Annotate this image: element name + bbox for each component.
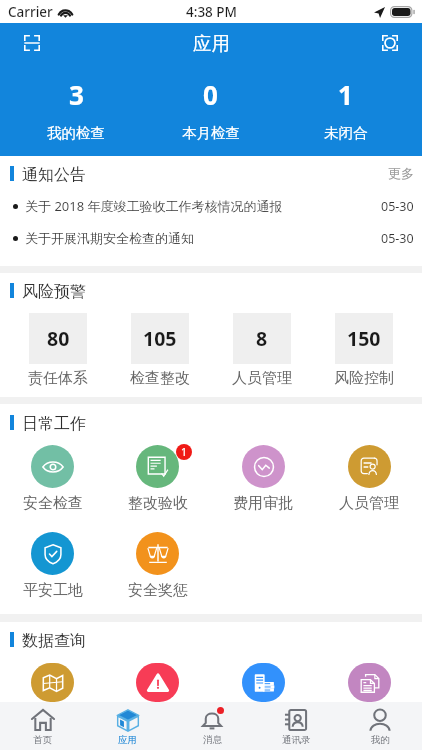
button[interactable]: 通讯录 — [254, 702, 338, 750]
staticText: 检查整改 — [130, 369, 190, 388]
staticText: 应用 — [193, 32, 230, 55]
button[interactable]: 费用查询 — [210, 663, 316, 702]
staticText: 安全检查 — [23, 494, 83, 513]
staticText: 8 — [256, 325, 268, 352]
button[interactable]: 我的 — [338, 702, 422, 750]
staticText: 安全奖惩 — [128, 581, 188, 600]
staticText: 80 — [47, 325, 70, 352]
staticText: 4:38 PM — [186, 3, 237, 21]
staticText: 应用 — [118, 734, 137, 746]
staticText: 人员管理 — [232, 369, 292, 388]
button[interactable]: 1 — [278, 63, 413, 156]
button[interactable]: 关于开展汛期安全检查的通知 — [0, 222, 422, 254]
staticText: 我的 — [371, 734, 390, 746]
button[interactable]: 3 — [9, 63, 143, 156]
button[interactable]: 隐患地图 — [0, 663, 105, 702]
button[interactable]: 安全检查 — [0, 445, 105, 513]
staticText: 通讯录 — [282, 734, 311, 746]
staticText: 责任体系 — [28, 369, 88, 388]
staticText: 更多 — [388, 165, 414, 181]
button[interactable]: 8 — [211, 313, 313, 388]
staticText: 通知公告 — [22, 165, 86, 185]
staticText: 未闭合 — [324, 124, 368, 142]
staticText: 3 — [69, 77, 84, 112]
button[interactable]: 费用审批 — [210, 445, 316, 513]
staticText: 风险控制 — [334, 369, 394, 388]
button[interactable]: 消息 — [170, 702, 254, 750]
button[interactable]: Scan code — [14, 25, 50, 61]
button[interactable]: 人员管理 — [316, 445, 422, 513]
button[interactable]: 关于 2018 年度竣工验收工作考核情况的通报 — [0, 190, 422, 222]
button[interactable]: 首页 — [0, 702, 85, 750]
staticText: 费用审批 — [233, 494, 293, 513]
staticText: 整改验收 — [128, 494, 188, 513]
staticText: 数据查询 — [22, 631, 86, 651]
staticText: 105 — [143, 325, 177, 352]
button[interactable]: 105 — [109, 313, 211, 388]
button[interactable]: 报表查询 — [316, 663, 422, 702]
staticText: 关于 2018 年度竣工验收工作考核情况的通报 — [25, 197, 283, 215]
staticText: 关于开展汛期安全检查的通知 — [25, 230, 194, 246]
button[interactable]: 平安工地 — [0, 532, 105, 600]
staticText: 本月检查 — [182, 124, 240, 142]
staticText: 首页 — [33, 734, 52, 746]
staticText: 风险预警 — [22, 282, 86, 302]
button[interactable]: 80 — [7, 313, 109, 388]
staticText: 150 — [347, 325, 381, 352]
button[interactable]: 更多 — [376, 158, 422, 188]
staticText: 1 — [338, 77, 353, 112]
staticText: 日常工作 — [22, 414, 86, 434]
button[interactable]: 1 — [105, 445, 210, 513]
button[interactable]: 安全奖惩 — [105, 532, 210, 600]
staticText: 05-30 — [381, 198, 414, 215]
staticText: 1 — [181, 445, 188, 459]
button[interactable]: 0 — [143, 63, 278, 156]
button[interactable]: 150 — [313, 313, 415, 388]
staticText: 05-30 — [381, 230, 414, 247]
staticText: 我的检查 — [47, 124, 105, 142]
staticText: 人员管理 — [339, 494, 399, 513]
button[interactable]: 应用 — [85, 702, 170, 750]
staticText: 消息 — [203, 734, 222, 746]
button[interactable]: 风险查询 — [105, 663, 210, 702]
button[interactable]: Focus search — [372, 25, 408, 61]
staticText: 平安工地 — [23, 581, 83, 600]
staticText: 0 — [203, 77, 218, 112]
staticText: Carrier — [8, 3, 53, 21]
